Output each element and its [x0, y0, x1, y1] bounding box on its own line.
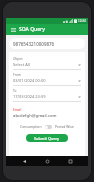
staticText: Submit Query: [34, 136, 60, 141]
button[interactable]: 9876543210009876: [9, 38, 85, 49]
staticText: Email: [13, 108, 22, 112]
button[interactable]: Object: [13, 57, 81, 73]
staticText: To: [13, 89, 17, 93]
staticText: 17/03/2024 23:59: [13, 94, 78, 99]
staticText: SOA Query: [19, 26, 45, 33]
staticText: Select All: [13, 62, 78, 67]
staticText: abcdefgh@gmail.com: [13, 113, 57, 119]
button[interactable]: To: [13, 89, 81, 105]
button[interactable]: From: [13, 73, 81, 89]
staticText: 03/01/2024 00:00: [13, 78, 78, 83]
button[interactable]: Open navigation menu: [9, 26, 17, 34]
staticText: Consumption: [20, 124, 42, 129]
button[interactable]: Submit Query: [26, 134, 68, 142]
button[interactable]: Back: [19, 156, 29, 166]
staticText: Period Wise: [55, 124, 74, 129]
staticText: 9876543210009876: [13, 41, 55, 47]
staticText: 12:34: [78, 19, 86, 23]
staticText: From: [13, 73, 21, 77]
button[interactable]: Recent apps: [65, 156, 75, 166]
button[interactable]: Home: [42, 156, 52, 166]
button[interactable]: Toggle consumption or period wise: [45, 125, 52, 129]
staticText: Object: [13, 57, 23, 61]
